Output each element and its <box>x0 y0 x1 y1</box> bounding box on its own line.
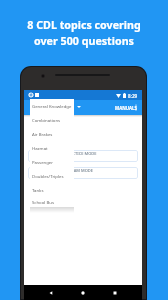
button[interactable]: Back <box>48 290 54 296</box>
button[interactable]: School Bus <box>30 197 74 207</box>
staticText: Hazmat <box>32 145 48 151</box>
button[interactable]: Doubles/Triples <box>30 169 74 183</box>
staticText: over 500 questions <box>0 34 168 49</box>
button[interactable]: Tanks <box>30 183 74 197</box>
staticText: 8 CDL topics covering <box>0 18 168 33</box>
button[interactable]: PRACTICE MODE <box>28 150 138 162</box>
button[interactable]: More options <box>134 104 138 111</box>
button[interactable]: Combinations <box>30 113 74 127</box>
button[interactable]: Passenger <box>30 155 74 169</box>
button[interactable]: Recent apps <box>112 290 118 296</box>
button[interactable]: General Knowledge <box>30 99 74 113</box>
staticText: School Bus <box>32 199 55 205</box>
button[interactable]: Air Brakes <box>30 127 74 141</box>
staticText: Tanks <box>32 187 44 193</box>
button[interactable]: MANUALS <box>115 105 137 111</box>
staticText: PRACTICE MODE <box>65 151 97 156</box>
button[interactable]: Home <box>80 290 86 296</box>
staticText: Combinations <box>32 117 61 123</box>
button[interactable]: EXAM MODE <box>28 167 138 179</box>
staticText: Air Brakes <box>32 131 53 137</box>
staticText: EXAM MODE <box>69 168 93 173</box>
staticText: Passenger <box>32 159 54 165</box>
staticText: Doubles/Triples <box>32 173 64 179</box>
staticText: 8:29 <box>128 93 138 99</box>
staticText: General Knowledge <box>32 103 72 109</box>
button[interactable]: Topic selector <box>77 106 81 108</box>
button[interactable]: Hazmat <box>30 141 74 155</box>
